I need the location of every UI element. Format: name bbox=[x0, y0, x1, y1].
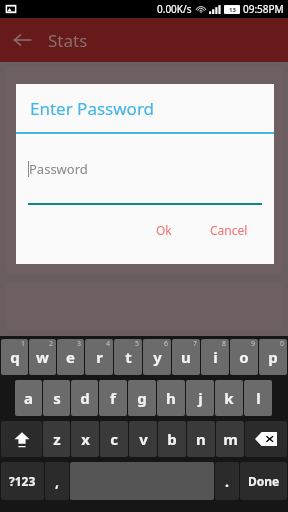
button[interactable]: b bbox=[158, 421, 186, 457]
button[interactable]: y bbox=[143, 339, 171, 375]
button[interactable]: ?123 bbox=[1, 462, 44, 500]
staticText: Done bbox=[248, 473, 280, 489]
staticText: x bbox=[81, 429, 90, 449]
staticText: d bbox=[80, 388, 90, 408]
button[interactable]: l bbox=[244, 380, 272, 416]
staticText: n bbox=[196, 429, 206, 449]
staticText: 1 bbox=[21, 339, 26, 349]
button[interactable]: Ok bbox=[146, 217, 182, 243]
staticText: 9 bbox=[251, 339, 256, 349]
button[interactable]: t bbox=[114, 339, 142, 375]
staticText: 2 bbox=[49, 339, 54, 349]
button[interactable]: , bbox=[45, 462, 69, 500]
staticText: c bbox=[110, 429, 118, 449]
staticText: j bbox=[198, 388, 203, 408]
button[interactable]: e bbox=[57, 339, 84, 375]
button[interactable]: u bbox=[172, 339, 200, 375]
button[interactable]: Shift bbox=[1, 421, 42, 457]
button[interactable]: x bbox=[71, 421, 99, 457]
button[interactable]: m bbox=[216, 421, 244, 457]
button[interactable]: w bbox=[29, 339, 56, 375]
staticText: 09:58PM bbox=[243, 2, 284, 16]
staticText: . bbox=[225, 472, 229, 491]
staticText: 8 bbox=[222, 339, 227, 349]
staticText: k bbox=[224, 388, 234, 408]
staticText: m bbox=[223, 429, 238, 449]
button[interactable]: g bbox=[128, 380, 156, 416]
staticText: e bbox=[66, 347, 75, 367]
staticText: t bbox=[125, 347, 132, 367]
staticText: Ok bbox=[156, 222, 172, 238]
button[interactable]: d bbox=[71, 380, 98, 416]
button[interactable]: s bbox=[43, 380, 70, 416]
staticText: h bbox=[166, 388, 176, 408]
staticText: 0 bbox=[280, 339, 285, 349]
staticText: l bbox=[256, 388, 261, 408]
staticText: i bbox=[213, 347, 218, 367]
staticText: s bbox=[53, 388, 61, 408]
staticText: o bbox=[239, 347, 249, 367]
button[interactable]: . bbox=[215, 462, 239, 500]
staticText: 6 bbox=[164, 339, 169, 349]
button[interactable]: r bbox=[85, 339, 113, 375]
staticText: , bbox=[55, 472, 59, 491]
staticText: 3 bbox=[77, 339, 82, 349]
staticText: b bbox=[167, 429, 177, 449]
button[interactable]: k bbox=[215, 380, 243, 416]
staticText: a bbox=[24, 388, 33, 408]
button[interactable]: j bbox=[186, 380, 214, 416]
button[interactable]: i bbox=[201, 339, 229, 375]
staticText: z bbox=[53, 429, 61, 449]
button[interactable]: Backspace bbox=[245, 421, 287, 457]
staticText: 13 bbox=[229, 6, 236, 14]
button[interactable]: f bbox=[99, 380, 127, 416]
staticText: Stats bbox=[48, 29, 88, 52]
staticText: 4 bbox=[106, 339, 111, 349]
button[interactable]: Done bbox=[240, 462, 287, 500]
staticText: r bbox=[96, 347, 103, 367]
staticText: q bbox=[10, 347, 20, 367]
staticText: ?123 bbox=[9, 473, 36, 489]
staticText: w bbox=[36, 347, 49, 367]
button[interactable]: q bbox=[1, 339, 28, 375]
staticText: v bbox=[139, 429, 148, 449]
button[interactable]: p bbox=[259, 339, 287, 375]
staticText: 7 bbox=[193, 339, 198, 349]
button[interactable]: o bbox=[230, 339, 258, 375]
button[interactable]: Back bbox=[0, 18, 44, 62]
staticText: f bbox=[110, 388, 116, 408]
button[interactable]: z bbox=[43, 421, 70, 457]
staticText: p bbox=[268, 347, 278, 367]
button[interactable]: Cancel bbox=[200, 217, 258, 243]
staticText: Enter Password bbox=[30, 97, 155, 120]
staticText: y bbox=[153, 347, 162, 367]
staticText: Cancel bbox=[210, 222, 248, 238]
staticText: 5 bbox=[135, 339, 140, 349]
button[interactable]: c bbox=[100, 421, 128, 457]
staticText: Password bbox=[29, 160, 88, 178]
button[interactable]: n bbox=[187, 421, 215, 457]
button[interactable]: v bbox=[129, 421, 157, 457]
staticText: g bbox=[137, 388, 147, 408]
staticText: u bbox=[181, 347, 191, 367]
button[interactable]: h bbox=[157, 380, 185, 416]
staticText: 0.00K/s bbox=[157, 2, 192, 16]
button[interactable]: a bbox=[15, 380, 42, 416]
